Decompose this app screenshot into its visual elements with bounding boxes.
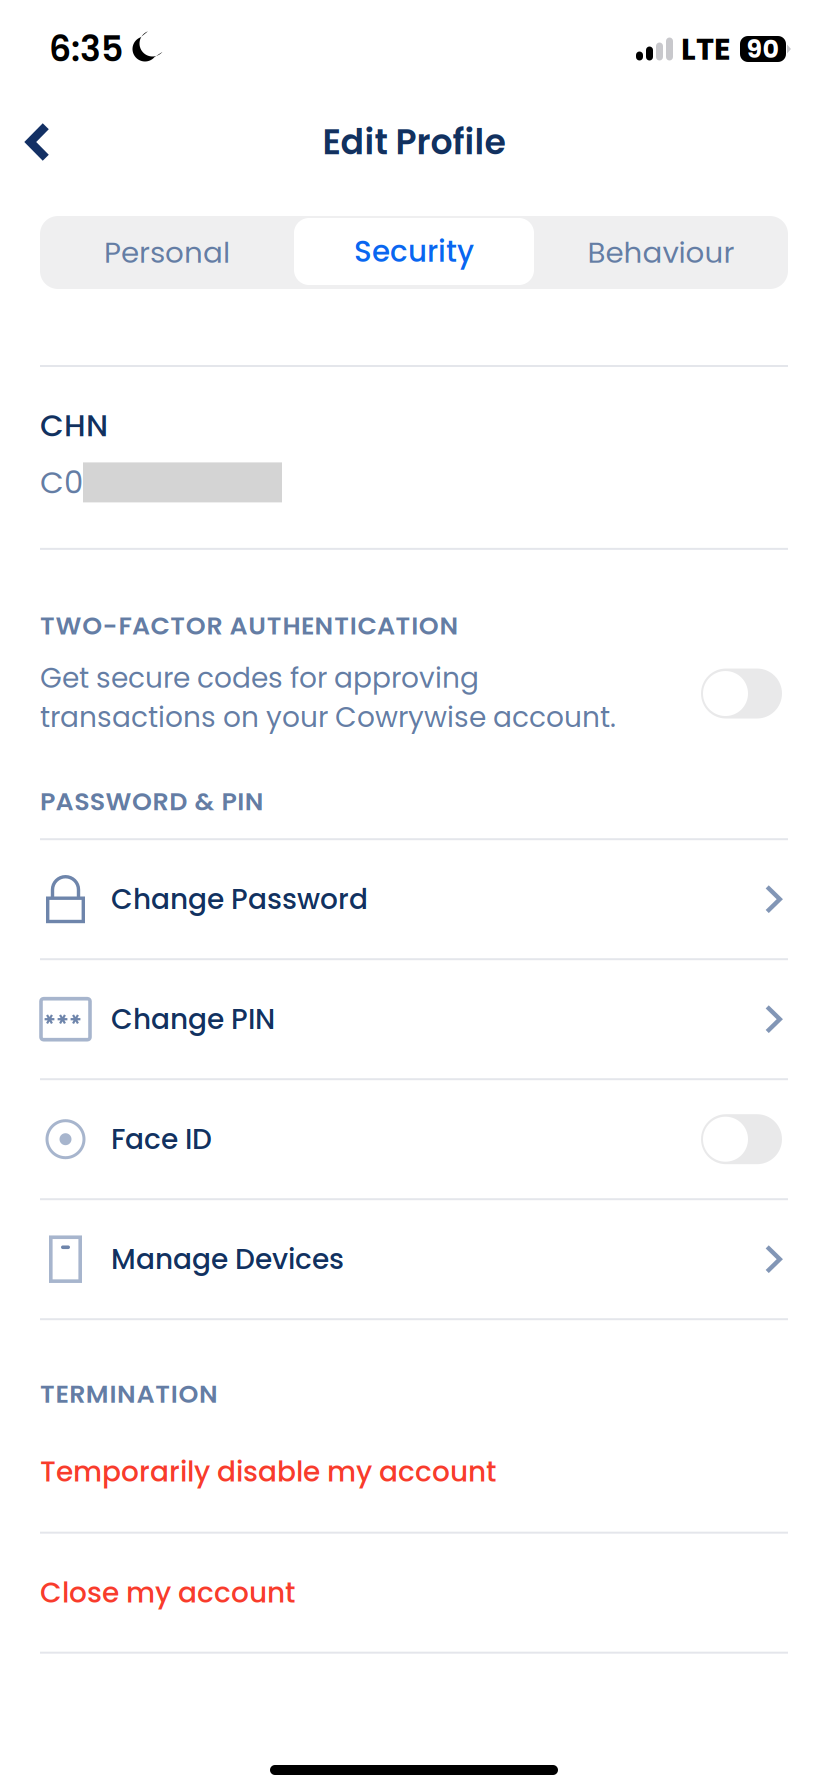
staticText: Manage Devices — [111, 1240, 344, 1279]
button[interactable]: Change Password — [40, 840, 788, 958]
staticText: PASSWORD & PIN — [40, 784, 264, 819]
staticText: Face ID — [111, 1120, 212, 1159]
staticText: Personal — [104, 232, 230, 273]
staticText: Change PIN — [111, 1000, 275, 1039]
staticText: Change Password — [111, 880, 368, 919]
staticText: TWO-FACTOR AUTHENTICATION — [40, 608, 458, 643]
button[interactable]: Close my account — [40, 1534, 788, 1652]
button[interactable]: Face ID — [40, 1080, 788, 1198]
button[interactable]: Back — [8, 102, 68, 182]
button[interactable]: Change PIN — [40, 960, 788, 1078]
staticText: TERMINATION — [40, 1376, 218, 1412]
button[interactable]: Temporarily disable my account — [40, 1412, 788, 1532]
staticText: Edit Profile — [322, 118, 505, 166]
staticText: C0 — [40, 461, 83, 504]
staticText: Close my account — [40, 1573, 295, 1612]
staticText: Temporarily disable my account — [40, 1452, 496, 1491]
staticText: 6:35 — [49, 25, 123, 73]
button[interactable]: Manage Devices — [40, 1200, 788, 1318]
staticText: LTE — [681, 27, 731, 70]
button[interactable]: Security — [294, 218, 534, 287]
staticText: Behaviour — [587, 232, 734, 273]
staticText: Get secure codes for approving transacti… — [40, 658, 616, 737]
button[interactable]: Personal — [40, 216, 294, 289]
staticText: CHN — [40, 404, 108, 447]
staticText: Security — [354, 231, 474, 272]
staticText: 90 — [746, 31, 779, 67]
button[interactable]: Two-factor authentication — [701, 668, 782, 718]
button[interactable]: Behaviour — [534, 216, 788, 289]
